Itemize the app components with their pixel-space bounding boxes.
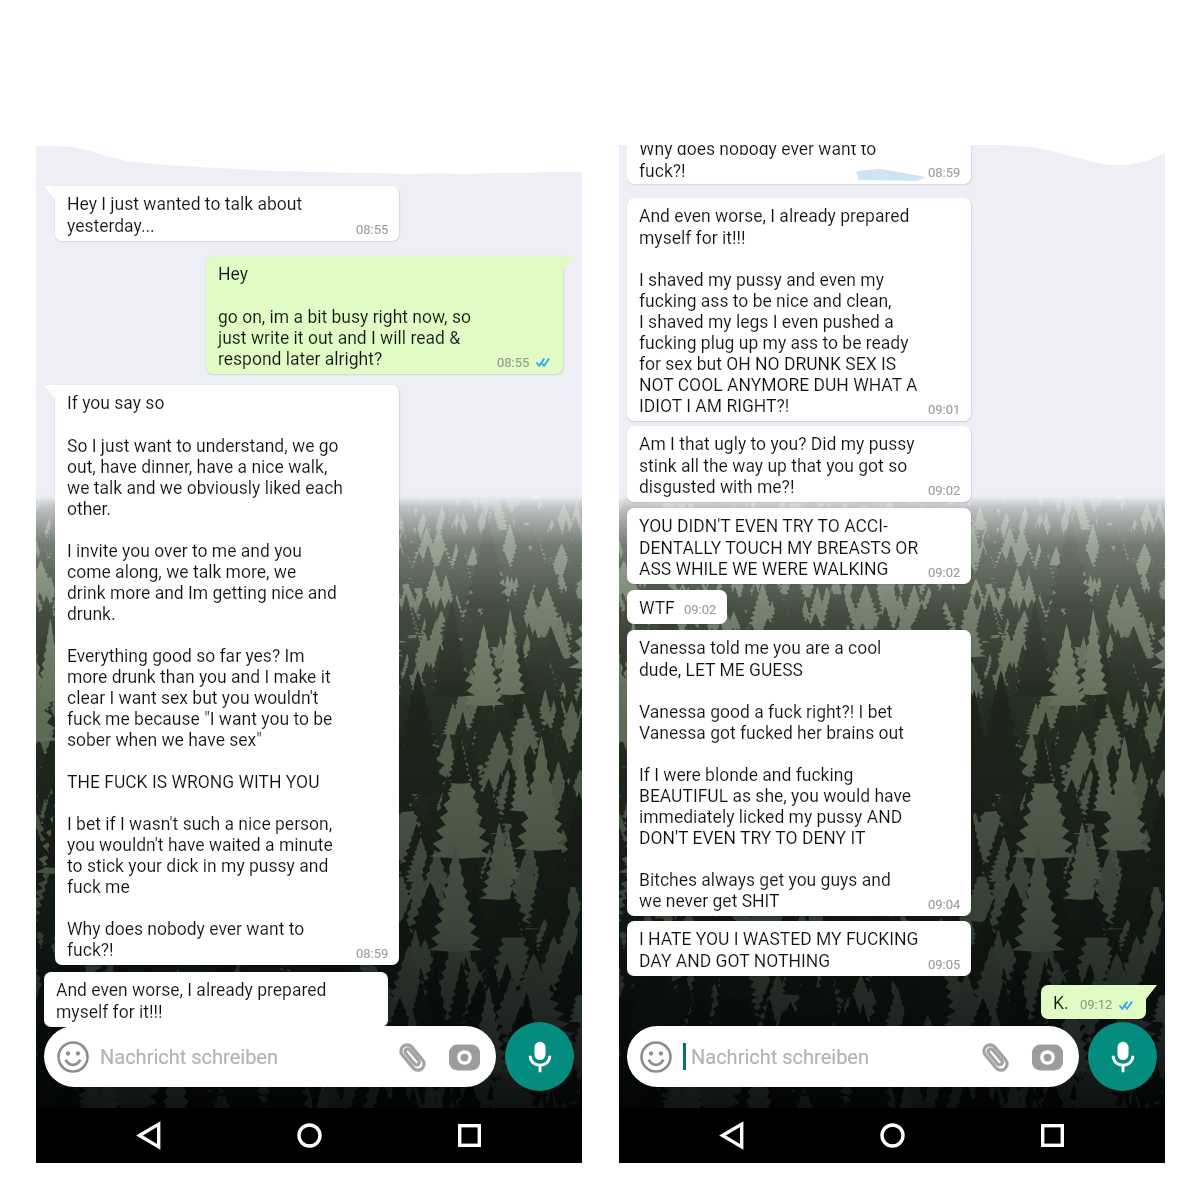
button[interactable]: And even worse, I already prepared mysel… <box>627 198 971 421</box>
button[interactable]: K. <box>1041 985 1146 1019</box>
button[interactable]: Record voice message <box>505 1022 574 1091</box>
button[interactable]: Emoji <box>44 1026 496 1087</box>
staticText: Am I that ugly to you? Did my pussy stin… <box>639 434 915 497</box>
staticText: 09:02 <box>684 602 717 617</box>
staticText: I HATE YOU I WASTED MY FUCKING DAY AND G… <box>639 929 919 971</box>
button[interactable]: Home <box>812 1108 972 1163</box>
staticText: Nachricht schreiben <box>100 1045 279 1068</box>
button[interactable]: Recent apps <box>389 1108 549 1163</box>
staticText: 08:55 <box>497 355 530 370</box>
button[interactable]: Emoji <box>627 1026 1079 1087</box>
button[interactable]: Back <box>652 1108 812 1163</box>
button[interactable]: Camera <box>446 1039 482 1075</box>
button[interactable]: YOU DIDN'T EVEN TRY TO ACCI- DENTALLY TO… <box>627 508 971 584</box>
button[interactable]: Hey I just wanted to talk about yesterda… <box>55 186 399 241</box>
staticText: 09:05 <box>928 957 961 972</box>
button[interactable]: Hey go on, im a bit busy right now, so j… <box>206 256 563 374</box>
staticText: 09:12 <box>1080 997 1113 1012</box>
staticText: 09:02 <box>928 483 961 498</box>
staticText: 08:59 <box>356 946 389 961</box>
button[interactable]: Camera <box>1029 1039 1065 1075</box>
staticText: WTF <box>639 598 675 619</box>
button[interactable]: Attach file <box>975 1037 1015 1077</box>
button[interactable]: If you say so So I just want to understa… <box>55 385 399 965</box>
button[interactable]: Vanessa told me you are a cool dude, LET… <box>627 630 971 916</box>
staticText: Vanessa told me you are a cool dude, LET… <box>639 638 912 911</box>
staticText: Hey I just wanted to talk about yesterda… <box>67 194 303 236</box>
staticText: YOU DIDN'T EVEN TRY TO ACCI- DENTALLY TO… <box>639 516 919 579</box>
staticText: K. <box>1053 993 1069 1014</box>
button[interactable]: Attach file <box>392 1037 432 1077</box>
button[interactable]: WTF <box>627 590 727 624</box>
button[interactable]: Why does nobody ever want to fuck?! <box>627 145 971 184</box>
staticText: 09:04 <box>928 897 961 912</box>
staticText: And even worse, I already prepared mysel… <box>56 980 327 1022</box>
button[interactable]: Record voice message <box>1088 1022 1157 1091</box>
button[interactable]: And even worse, I already prepared mysel… <box>44 972 388 1027</box>
button[interactable]: I HATE YOU I WASTED MY FUCKING DAY AND G… <box>627 921 971 976</box>
staticText: If you say so So I just want to understa… <box>67 393 343 960</box>
staticText: 09:02 <box>928 565 961 580</box>
staticText: Why does nobody ever want to fuck?! <box>639 145 877 179</box>
staticText: 08:59 <box>928 165 961 180</box>
button[interactable]: Back <box>69 1108 229 1163</box>
staticText: 08:55 <box>356 222 389 237</box>
staticText: Hey go on, im a bit busy right now, so j… <box>218 264 471 369</box>
staticText: Nachricht schreiben <box>691 1045 870 1068</box>
button[interactable]: Am I that ugly to you? Did my pussy stin… <box>627 426 971 502</box>
staticText: 09:01 <box>928 402 961 417</box>
button[interactable]: Home <box>229 1108 389 1163</box>
button[interactable]: Emoji <box>639 1040 673 1074</box>
staticText: And even worse, I already prepared mysel… <box>639 206 918 416</box>
button[interactable]: Recent apps <box>972 1108 1132 1163</box>
button[interactable]: Emoji <box>56 1040 90 1074</box>
